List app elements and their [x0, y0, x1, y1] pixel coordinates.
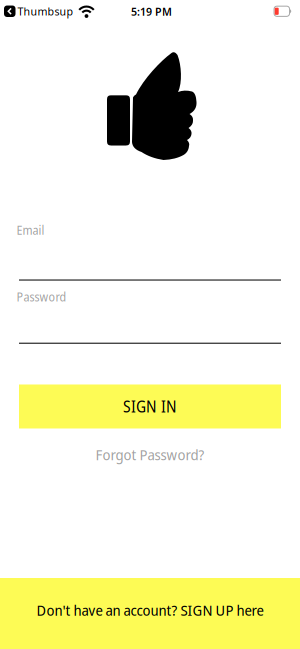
staticText: Forgot Password? — [95, 444, 204, 464]
button[interactable]: Back to Thumbsup — [4, 4, 73, 18]
staticText: Don't have an account? SIGN UP here — [36, 600, 263, 620]
staticText: Email — [16, 222, 44, 238]
staticText: 5:19 PM — [131, 4, 172, 19]
staticText: SIGN IN — [123, 396, 177, 417]
button[interactable]: SIGN IN — [19, 384, 281, 428]
staticText: Thumbsup — [17, 4, 73, 18]
button[interactable]: Don't have an account? SIGN UP here — [0, 578, 300, 649]
button[interactable]: Forgot Password? — [95, 444, 204, 464]
button[interactable]: Email — [19, 222, 281, 281]
staticText: Password — [16, 289, 66, 305]
button[interactable]: Password — [19, 281, 281, 344]
